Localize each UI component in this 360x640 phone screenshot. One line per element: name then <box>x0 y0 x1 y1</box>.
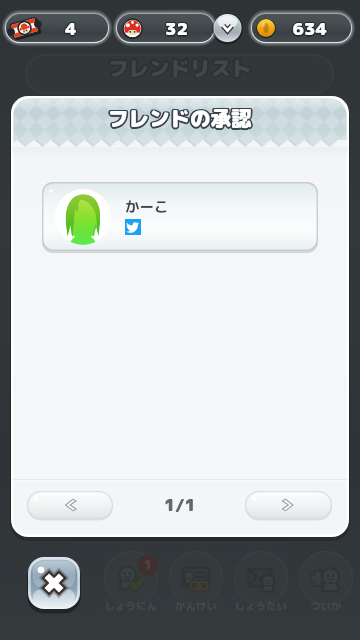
button[interactable]: Next page <box>245 491 332 519</box>
button[interactable]: Expand <box>214 13 242 43</box>
button[interactable]: Close <box>28 557 80 608</box>
button[interactable]: Previous page <box>27 491 113 519</box>
button[interactable]: Tickets: 4 <box>6 14 108 42</box>
button[interactable]: しょうたい <box>235 556 289 610</box>
button[interactable]: かんけい <box>170 556 224 610</box>
button[interactable]: しょうにん <box>105 556 159 610</box>
button[interactable]: Friend かーこ <box>42 182 318 251</box>
button[interactable]: Toad points: 32 <box>117 14 214 42</box>
button[interactable]: Coins: 634 <box>252 14 351 42</box>
button[interactable]: ついか <box>300 556 354 610</box>
